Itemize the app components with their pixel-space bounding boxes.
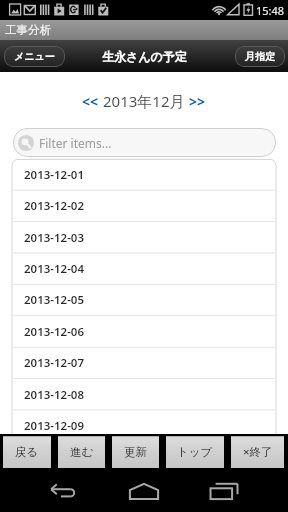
button[interactable]: Back: [40, 470, 88, 512]
button[interactable]: 2013-12-04: [12, 253, 276, 284]
staticText: 工事分析: [5, 23, 51, 37]
staticText: 戻る: [15, 445, 39, 459]
button[interactable]: 2013-12-09: [12, 410, 276, 441]
button[interactable]: 戻る: [3, 436, 51, 468]
button[interactable]: トップ: [166, 436, 224, 468]
button[interactable]: 2013-12-08: [12, 379, 276, 410]
staticText: 2013-12-04: [24, 261, 84, 277]
staticText: 2013-12-02: [24, 198, 84, 214]
staticText: 2013-12-08: [24, 387, 84, 403]
staticText: 生永さんの予定: [102, 49, 187, 64]
button[interactable]: 2013-12-07: [12, 347, 276, 378]
button[interactable]: 2013-12-01: [12, 159, 276, 190]
staticText: 更新: [124, 445, 147, 459]
staticText: 2013-12-05: [24, 292, 84, 308]
button[interactable]: 2013-12-05: [12, 284, 276, 315]
staticText: Filter items...: [39, 135, 112, 151]
button[interactable]: メニュー: [4, 46, 65, 67]
staticText: 進む: [70, 445, 94, 459]
button[interactable]: 2013-12-03: [12, 222, 276, 253]
button[interactable]: Filter items...: [13, 128, 276, 157]
staticText: ×終了: [243, 444, 273, 460]
staticText: 月指定: [245, 50, 275, 63]
button[interactable]: 2013-12-02: [12, 190, 276, 221]
button[interactable]: 更新: [112, 436, 159, 468]
staticText: トップ: [177, 445, 213, 459]
staticText: 2013年12月: [103, 91, 185, 111]
button[interactable]: ×終了: [231, 436, 284, 468]
button[interactable]: 2013-12-06: [12, 316, 276, 347]
staticText: 15:48: [256, 3, 285, 18]
button[interactable]: >>: [189, 92, 206, 111]
staticText: 2013-12-09: [24, 418, 84, 434]
staticText: 2013-12-03: [24, 230, 84, 246]
button[interactable]: 月指定: [235, 46, 285, 67]
staticText: メニュー: [14, 50, 55, 63]
button[interactable]: Home: [120, 470, 168, 512]
staticText: 2013-12-07: [24, 355, 84, 371]
button[interactable]: <<: [82, 92, 99, 111]
staticText: 2013-12-06: [24, 324, 84, 340]
button[interactable]: 進む: [58, 436, 105, 468]
button[interactable]: Recent apps: [200, 470, 248, 512]
staticText: 2013-12-01: [24, 167, 84, 183]
